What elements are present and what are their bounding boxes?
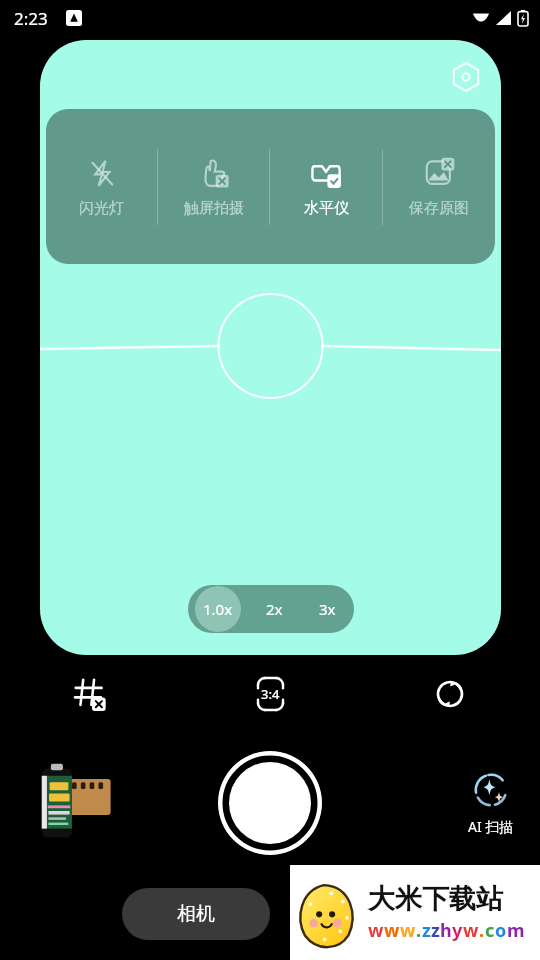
button[interactable]: Shutter (218, 751, 322, 855)
button[interactable]: 水平仪 (270, 109, 382, 264)
button[interactable]: 2x (248, 585, 301, 633)
button[interactable]: Gallery (30, 763, 114, 843)
staticText: h (440, 918, 452, 943)
staticText: . (479, 918, 485, 943)
button[interactable]: 3:4 (180, 665, 360, 723)
staticText: . (416, 918, 422, 943)
button[interactable]: 3x (301, 585, 354, 633)
staticText: 3:4 (261, 685, 280, 703)
staticText: 触屏拍摄 (184, 199, 244, 218)
staticText: 相机 (177, 902, 215, 926)
staticText: m (507, 918, 525, 943)
staticText: 水平仪 (304, 199, 349, 218)
staticText: 2x (266, 599, 283, 619)
staticText: 1.0x (203, 599, 233, 619)
button[interactable]: Settings (447, 58, 485, 96)
staticText: 3x (319, 599, 336, 619)
staticText: z (422, 918, 431, 943)
staticText: c (485, 918, 495, 943)
button[interactable]: 1.0x (188, 585, 248, 633)
staticText: AI 扫描 (468, 817, 514, 836)
button[interactable]: Switch camera (360, 665, 540, 723)
staticText: 闪光灯 (79, 199, 124, 218)
button[interactable]: 保存原图 (383, 109, 495, 264)
button[interactable]: 触屏拍摄 (158, 109, 269, 264)
staticText: y (452, 918, 463, 943)
button[interactable]: Grid off (0, 665, 180, 723)
staticText: w (384, 918, 400, 943)
staticText: w (463, 918, 479, 943)
button[interactable]: 相机 (122, 888, 270, 940)
staticText: 保存原图 (409, 199, 469, 218)
staticText: 2:23 (14, 7, 48, 30)
button[interactable]: AI 扫描 (468, 770, 514, 836)
staticText: w (368, 918, 384, 943)
button[interactable]: 闪光灯 (46, 109, 157, 264)
staticText: 大米下载站 (368, 882, 503, 916)
staticText: z (431, 918, 440, 943)
staticText: w (400, 918, 416, 943)
staticText: o (495, 918, 507, 943)
